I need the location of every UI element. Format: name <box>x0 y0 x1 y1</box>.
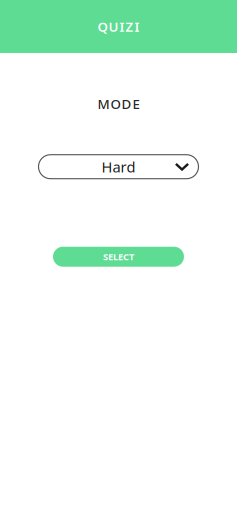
staticText: SELECT <box>103 250 134 263</box>
button[interactable]: SELECT <box>53 247 184 267</box>
staticText: Q U I Z I <box>97 18 139 35</box>
staticText: M O D E <box>97 95 139 113</box>
staticText: Hard <box>101 157 135 176</box>
button[interactable]: Mode, Hard <box>38 155 198 179</box>
